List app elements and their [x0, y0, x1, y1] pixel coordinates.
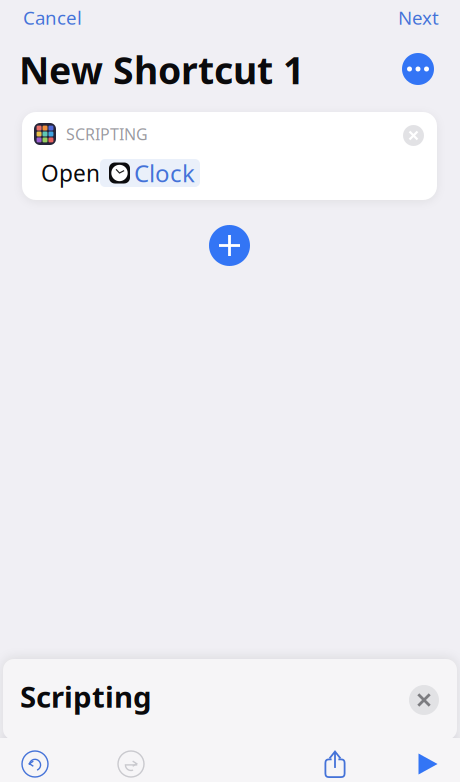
staticText: Open [41, 158, 100, 188]
button[interactable]: Run [405, 744, 451, 782]
staticText: Cancel [23, 5, 82, 30]
staticText: New Shortcut 1 [19, 45, 304, 95]
staticText: Next [398, 5, 439, 30]
button[interactable]: Next [396, 0, 441, 35]
button[interactable]: Share [312, 744, 358, 782]
staticText: SCRIPTING [66, 123, 148, 145]
button[interactable]: Add action [209, 225, 250, 266]
button[interactable]: Redo [108, 744, 154, 782]
staticText: Scripting [20, 677, 152, 716]
staticText: Clock [134, 157, 195, 189]
button[interactable]: Close [409, 685, 439, 715]
button[interactable]: Clock [100, 159, 200, 187]
button[interactable]: Remove action [403, 125, 424, 146]
button[interactable]: Undo [12, 744, 58, 782]
button[interactable]: More options [402, 53, 434, 85]
button[interactable]: Cancel [21, 0, 84, 35]
